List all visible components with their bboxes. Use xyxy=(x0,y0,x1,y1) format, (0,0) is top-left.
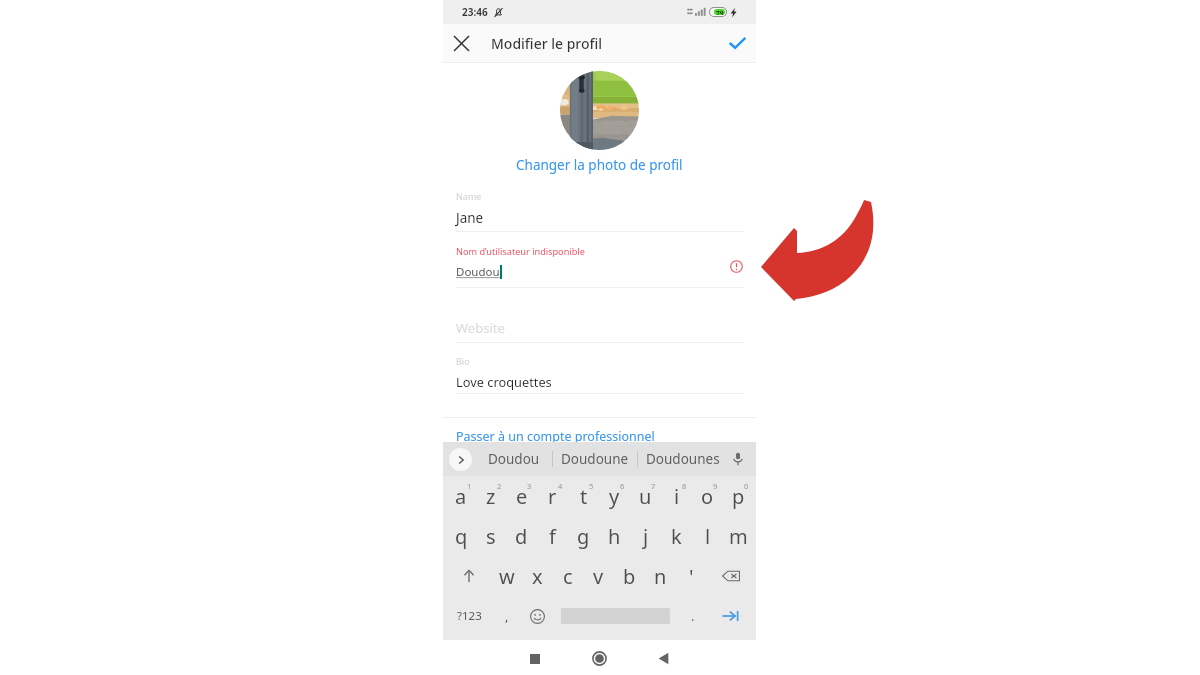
staticText: f xyxy=(549,523,556,550)
staticText: u xyxy=(639,483,652,510)
staticText: z xyxy=(486,483,496,510)
button[interactable]: w xyxy=(492,556,522,596)
button[interactable]: h xyxy=(599,516,630,556)
staticText: 6 xyxy=(620,481,625,491)
staticText: p xyxy=(732,483,745,510)
button[interactable]: i xyxy=(661,476,692,516)
staticText: Doudou xyxy=(456,264,500,280)
staticText: ' xyxy=(689,563,694,590)
button[interactable]: a xyxy=(446,476,476,516)
staticText: l xyxy=(705,523,711,550)
button[interactable]: ' xyxy=(676,556,707,596)
staticText: i xyxy=(674,483,680,510)
staticText: Website xyxy=(456,319,505,337)
button[interactable]: j xyxy=(630,516,661,556)
button[interactable]: Doudounes xyxy=(638,442,728,476)
staticText: c xyxy=(563,563,573,590)
staticText: e xyxy=(516,483,528,510)
staticText: k xyxy=(671,523,682,550)
staticText: 9 xyxy=(713,481,718,491)
staticText: Name xyxy=(456,190,482,202)
staticText: Nom d’utilisateur indisponible xyxy=(456,245,585,257)
button[interactable]: Retour xyxy=(648,640,679,675)
staticText: q xyxy=(455,523,468,550)
button[interactable]: b xyxy=(614,556,645,596)
staticText: . xyxy=(691,607,695,625)
button[interactable]: Micro xyxy=(728,442,748,476)
staticText: d xyxy=(515,523,528,550)
staticText: 8 xyxy=(682,481,687,491)
staticText: g xyxy=(577,523,590,550)
button[interactable]: l xyxy=(692,516,723,556)
button[interactable]: Valider xyxy=(718,24,756,62)
staticText: 0 xyxy=(744,481,749,491)
staticText: 5 xyxy=(589,481,594,491)
button[interactable]: c xyxy=(552,556,583,596)
button[interactable]: Doudoune xyxy=(553,442,637,476)
staticText: h xyxy=(608,523,621,550)
staticText: 4 xyxy=(558,481,563,491)
button[interactable]: o xyxy=(692,476,723,516)
staticText: ?123 xyxy=(457,608,482,624)
button[interactable]: ?123 xyxy=(449,596,489,640)
button[interactable]: Suivant xyxy=(711,596,749,640)
button[interactable]: m xyxy=(723,516,754,556)
button[interactable]: f xyxy=(537,516,568,556)
button[interactable]: r xyxy=(537,476,568,516)
staticText: 7 xyxy=(651,481,656,491)
staticText: 79 xyxy=(716,9,724,15)
staticText: 1 xyxy=(467,481,472,491)
button[interactable]: . xyxy=(679,596,707,640)
button[interactable]: s xyxy=(476,516,506,556)
staticText: y xyxy=(609,483,620,510)
staticText: j xyxy=(643,523,649,550)
button[interactable]: q xyxy=(446,516,476,556)
staticText: x xyxy=(532,563,543,590)
staticText: t xyxy=(580,483,588,510)
button[interactable]: Espace xyxy=(553,596,677,640)
staticText: Changer la photo de profil xyxy=(516,156,683,174)
staticText: Jane xyxy=(456,209,484,227)
button[interactable]: Majuscule xyxy=(446,556,492,596)
button[interactable]: e xyxy=(506,476,537,516)
button[interactable]: , xyxy=(492,596,522,640)
staticText: Love croquettes xyxy=(456,373,552,390)
button[interactable]: p xyxy=(723,476,754,516)
button[interactable]: Changer la photo de profil xyxy=(516,156,683,174)
button[interactable]: Passer à un compte professionnel xyxy=(456,428,655,445)
button[interactable]: Emoji xyxy=(522,596,552,640)
staticText: Passer à un compte professionnel xyxy=(456,428,655,445)
button[interactable]: x xyxy=(522,556,552,596)
staticText: v xyxy=(593,563,604,590)
button[interactable]: k xyxy=(661,516,692,556)
staticText: 3 xyxy=(527,481,532,491)
button[interactable]: Applications récentes xyxy=(519,640,550,675)
button[interactable]: t xyxy=(568,476,599,516)
staticText: a xyxy=(455,483,467,510)
button[interactable]: Plus de suggestions xyxy=(449,448,472,471)
staticText: Modifier le profil xyxy=(491,34,603,53)
staticText: 2 xyxy=(497,481,502,491)
staticText: m xyxy=(729,523,748,550)
button[interactable]: y xyxy=(599,476,630,516)
button[interactable]: v xyxy=(583,556,614,596)
button[interactable]: Supprimer xyxy=(707,556,754,596)
button[interactable]: z xyxy=(476,476,506,516)
button[interactable]: Fermer xyxy=(443,24,479,62)
button[interactable]: Doudou xyxy=(475,442,552,476)
button[interactable]: Photo de profil xyxy=(560,71,639,150)
button[interactable]: n xyxy=(645,556,676,596)
staticText: r xyxy=(548,483,557,510)
staticText: o xyxy=(701,483,714,510)
button[interactable]: Erreur xyxy=(728,258,745,275)
button[interactable]: u xyxy=(630,476,661,516)
staticText: , xyxy=(505,607,509,625)
staticText: s xyxy=(486,523,496,550)
staticText: Bio xyxy=(456,355,470,367)
staticText: 23:46 xyxy=(462,5,488,19)
button[interactable]: g xyxy=(568,516,599,556)
staticText: Doudou xyxy=(488,450,540,468)
button[interactable]: Accueil xyxy=(584,640,615,675)
button[interactable]: d xyxy=(506,516,537,556)
staticText: w xyxy=(499,563,515,590)
